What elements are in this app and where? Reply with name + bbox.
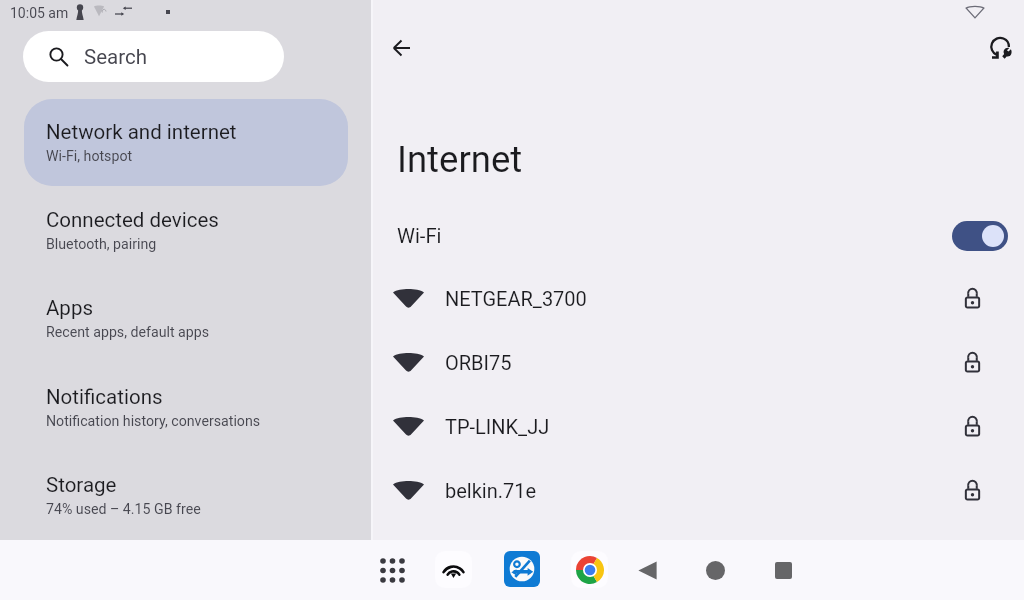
staticText: Search [84, 45, 147, 69]
button[interactable]: Settings [435, 551, 472, 588]
staticText: 74% used – 4.15 GB free [46, 501, 201, 518]
button[interactable]: TP-LINK_JJ [371, 394, 1024, 458]
button[interactable]: Storage [24, 452, 348, 539]
button[interactable]: Reset Wi-Fi settings [979, 26, 1023, 70]
button[interactable]: Notifications [24, 364, 348, 451]
button[interactable]: Wi-Fi on [952, 221, 1008, 251]
button[interactable]: NETGEAR_3700 [371, 266, 1024, 330]
staticText: Notifications [46, 385, 163, 409]
staticText: Notification history, conversations [46, 413, 261, 430]
staticText: Apps [46, 296, 93, 320]
button[interactable]: Connected devices [24, 187, 348, 274]
button[interactable]: ORBI75 [371, 330, 1024, 394]
button[interactable]: Apps [24, 275, 348, 362]
button[interactable]: Recent apps [761, 548, 805, 592]
staticText: belkin.71e [445, 479, 537, 502]
button[interactable]: belkin.71e [371, 458, 1024, 522]
staticText: NETGEAR_3700 [445, 287, 587, 310]
button[interactable]: Back [625, 548, 669, 592]
staticText: Storage [46, 473, 117, 497]
staticText: TP-LINK_JJ [445, 415, 550, 438]
button[interactable]: QuickSupport [504, 551, 540, 587]
staticText: Connected devices [46, 208, 219, 232]
staticText: Wi-Fi, hotspot [46, 148, 133, 165]
button[interactable]: Back [379, 26, 423, 70]
button[interactable]: Search [23, 31, 284, 82]
button[interactable]: Network and internet [24, 99, 348, 186]
button[interactable]: Home [693, 548, 737, 592]
staticText: Bluetooth, pairing [46, 236, 157, 253]
staticText: Wi-Fi [397, 224, 442, 248]
staticText: Network and internet [46, 120, 237, 144]
staticText: Internet [397, 138, 523, 181]
staticText: ORBI75 [445, 351, 512, 374]
button[interactable]: Wi-Fi [371, 209, 1024, 263]
button[interactable]: All apps [370, 548, 414, 592]
staticText: 10:05 am [10, 5, 69, 21]
staticText: Recent apps, default apps [46, 324, 210, 341]
button[interactable]: Chrome [571, 551, 608, 588]
